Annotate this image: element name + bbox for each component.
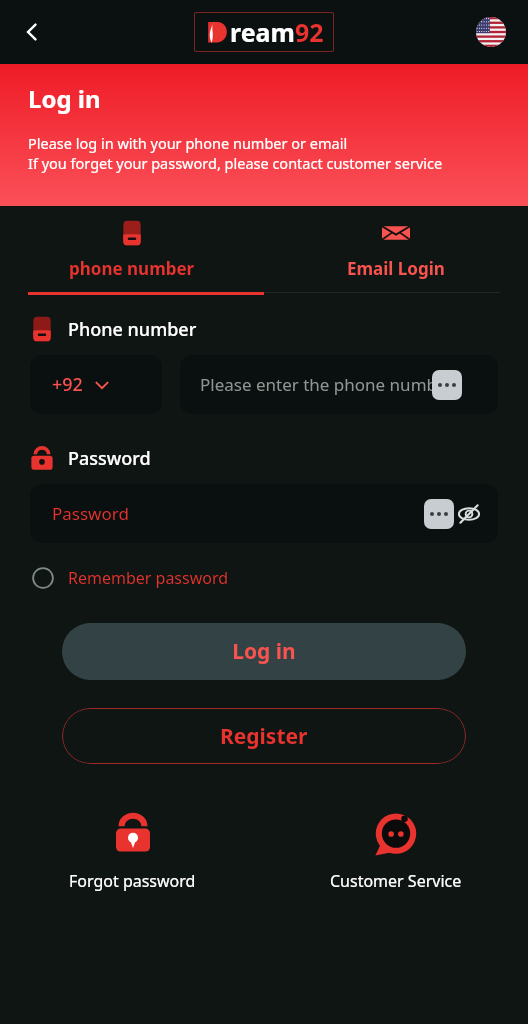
button[interactable]: Log in [62,623,466,680]
staticText: Please enter the phone number [200,373,454,396]
button[interactable]: Back [8,8,56,56]
staticText: Remember password [68,567,229,589]
staticText: Password [68,446,151,471]
staticText: Log in [28,82,101,115]
button[interactable]: Remember password [26,561,235,595]
staticText: Phone number [68,317,197,342]
button[interactable]: phone number [0,206,264,292]
button[interactable]: Customer Service [324,806,468,898]
staticText: Customer Service [330,870,462,892]
button[interactable]: Please enter the phone number [180,355,498,414]
button[interactable]: Language [474,15,508,49]
staticText: Register [220,722,308,751]
button[interactable]: +92 [30,355,162,414]
button[interactable]: Password [30,484,498,543]
staticText: +92 [52,372,83,397]
staticText: Forgot password [69,870,196,892]
staticText: Email Login [347,257,445,280]
staticText: 92 [295,15,324,49]
button[interactable]: Email Login [264,206,528,292]
button[interactable]: Register [62,708,466,764]
staticText: Password [52,502,129,525]
staticText: If you forget your password, please cont… [28,153,443,173]
staticText: phone number [69,257,195,280]
staticText: ream [230,15,295,49]
button[interactable]: Show password [454,499,484,529]
staticText: Please log in with your phone number or … [28,133,348,153]
button[interactable]: Forgot password [63,806,202,898]
staticText: Log in [232,637,296,666]
